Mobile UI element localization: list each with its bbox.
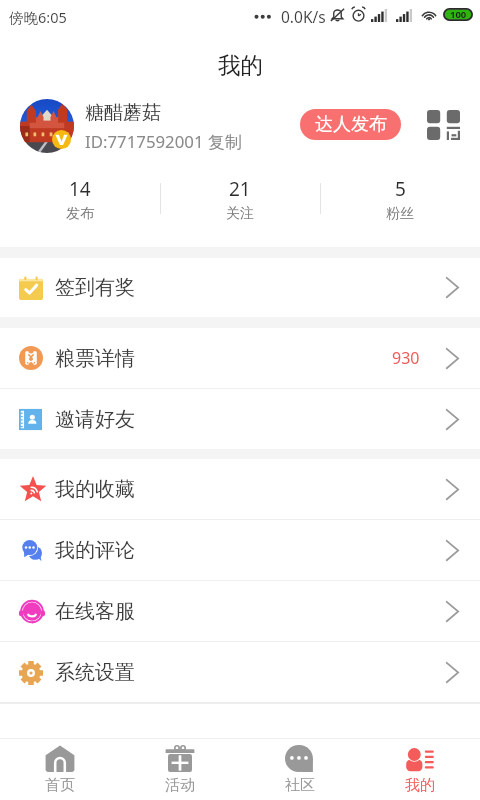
staticText: 活动	[165, 776, 195, 795]
button[interactable]: 二维码	[427, 110, 460, 140]
staticText: 签到有奖	[55, 275, 135, 300]
staticText: 14	[69, 176, 91, 202]
staticText: 糖醋蘑菇	[85, 101, 161, 125]
staticText: 我的	[405, 776, 435, 795]
staticText: 我的	[218, 51, 263, 79]
button[interactable]: 我的评论	[0, 520, 480, 580]
button[interactable]: 达人发布	[300, 109, 401, 140]
button[interactable]: 签到有奖	[0, 258, 480, 317]
staticText: 首页	[45, 776, 75, 795]
button[interactable]: 邀请好友	[0, 389, 480, 449]
button[interactable]: 21	[160, 175, 320, 223]
staticText: 系统设置	[55, 660, 135, 685]
staticText: 5	[395, 176, 406, 202]
button[interactable]: 活动	[120, 739, 240, 800]
button[interactable]: 5	[320, 175, 480, 223]
staticText: 0.0K/s	[281, 6, 326, 27]
staticText: 930	[392, 347, 420, 369]
staticText: 100	[450, 8, 467, 21]
button[interactable]: 首页	[0, 739, 120, 800]
staticText: 在线客服	[55, 599, 135, 624]
staticText: 社区	[285, 776, 315, 795]
staticText: 邀请好友	[55, 407, 135, 432]
staticText: ID:7717592001 复制	[85, 130, 242, 153]
button[interactable]: 系统设置	[0, 642, 480, 703]
staticText: 21	[229, 176, 251, 202]
staticText: 我的收藏	[55, 477, 135, 502]
button[interactable]: 在线客服	[0, 581, 480, 641]
staticText: 粉丝	[386, 205, 414, 223]
button[interactable]: 我的收藏	[0, 459, 480, 519]
staticText: 发布	[66, 205, 94, 223]
staticText: 达人发布	[315, 113, 387, 136]
button[interactable]: 14	[0, 175, 160, 223]
staticText: 傍晚6:05	[9, 7, 67, 27]
staticText: 关注	[226, 205, 254, 223]
button[interactable]: 社区	[240, 739, 360, 800]
button[interactable]: 我的	[360, 739, 480, 800]
button[interactable]: 粮票详情	[0, 328, 480, 388]
staticText: 粮票详情	[55, 346, 135, 371]
staticText: 我的评论	[55, 538, 135, 563]
